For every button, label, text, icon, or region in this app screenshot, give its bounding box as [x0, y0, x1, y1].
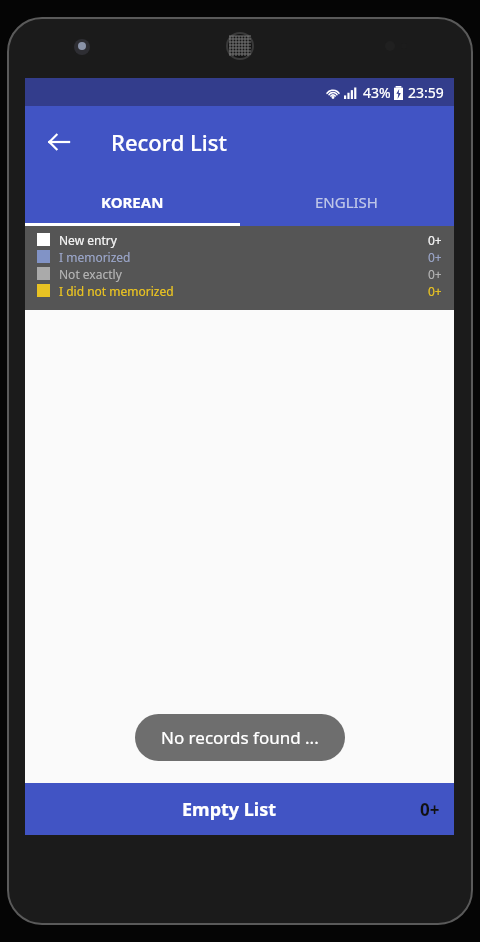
staticText: Empty List [182, 797, 277, 822]
button[interactable]: Empty List [25, 783, 454, 835]
staticText: ENGLISH [315, 192, 378, 212]
staticText: Record List [111, 127, 227, 157]
staticText: 0+ [428, 266, 442, 282]
button[interactable]: I memorized [37, 248, 442, 265]
button[interactable]: No records found ... [135, 714, 345, 761]
staticText: 0+ [420, 798, 440, 821]
button[interactable]: I did not memorized [37, 282, 442, 299]
button[interactable]: New entry [37, 231, 442, 248]
staticText: 0+ [428, 232, 442, 248]
staticText: 0+ [428, 249, 442, 265]
staticText: I did not memorized [59, 283, 174, 299]
staticText: Not exactly [59, 266, 122, 282]
staticText: I memorized [59, 249, 131, 265]
staticText: No records found ... [161, 726, 319, 749]
staticText: KOREAN [101, 192, 164, 212]
staticText: New entry [59, 232, 117, 248]
button[interactable]: Back [39, 122, 79, 162]
staticText: 0+ [428, 283, 442, 299]
button[interactable]: Not exactly [37, 265, 442, 282]
button[interactable]: KOREAN [25, 177, 239, 226]
staticText: 23:59 [408, 83, 444, 102]
staticText: 43% [363, 83, 391, 102]
button[interactable]: ENGLISH [239, 177, 454, 226]
